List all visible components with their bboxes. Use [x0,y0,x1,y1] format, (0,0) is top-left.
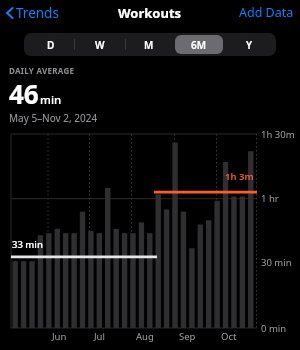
staticText: D [47,38,55,52]
staticText: 1 hr [261,192,279,205]
staticText: Workouts [118,4,182,22]
staticText: 0 min [261,322,287,335]
staticText: 46 [9,76,39,111]
staticText: Y [246,38,253,52]
button[interactable]: 6M [175,35,223,54]
button[interactable]: Y [225,35,273,54]
staticText: Trends [16,4,59,22]
staticText: W [95,38,105,52]
staticText: min [40,92,62,108]
staticText: 33 min [12,238,43,251]
staticText: Jun [52,330,67,343]
staticText: May 5–Nov 2, 2024 [9,111,98,125]
button[interactable]: M [125,35,173,54]
button[interactable]: D [27,35,74,54]
staticText: 1h 3m [225,170,254,183]
button[interactable]: W [76,35,123,54]
staticText: M [144,38,154,52]
staticText: 30 min [261,256,292,269]
staticText: 6M [191,38,207,52]
button[interactable]: Back to Trends [4,1,61,25]
staticText: DAILY AVERAGE [9,65,75,76]
staticText: Oct [221,330,237,343]
staticText: Sep [179,330,196,343]
button[interactable]: Add Data [237,2,296,23]
staticText: Aug [136,330,154,343]
other: Back to Trends [6,6,14,20]
staticText: 1h 30m [261,128,295,141]
staticText: Jul [94,330,105,343]
